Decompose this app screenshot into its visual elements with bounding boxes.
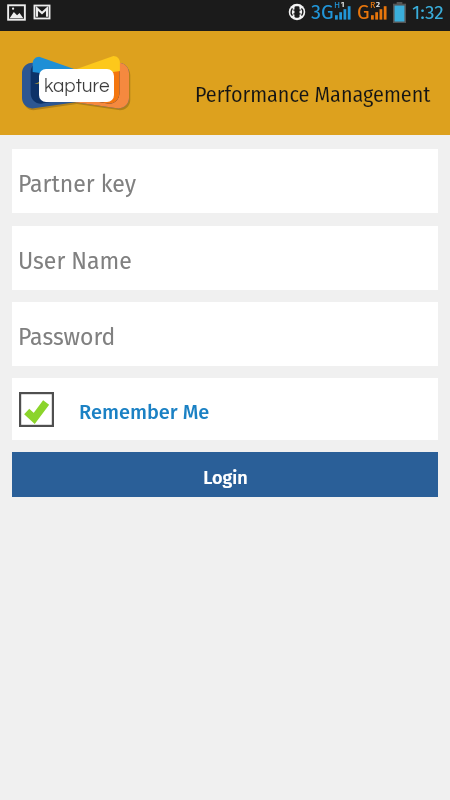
staticText: Partner key [18, 170, 137, 198]
staticText: G [357, 0, 370, 24]
staticText: Remember Me [79, 400, 210, 424]
button[interactable]: Remember Me [12, 378, 438, 440]
staticText: 3G [311, 0, 334, 24]
staticText: Login [203, 467, 248, 489]
staticText: kapture [44, 76, 110, 96]
staticText: H [334, 0, 341, 11]
button[interactable]: Login [12, 452, 438, 497]
staticText: Performance Management [195, 81, 431, 107]
button[interactable]: Password [12, 302, 438, 366]
button[interactable]: User Name [12, 226, 438, 290]
staticText: Password [18, 323, 116, 351]
staticText: 2 [376, 0, 380, 10]
staticText: R [370, 0, 376, 11]
staticText: 1:32 [412, 1, 444, 24]
staticText: User Name [18, 247, 132, 275]
staticText: 1 [341, 0, 345, 10]
button[interactable]: Partner key [12, 149, 438, 213]
